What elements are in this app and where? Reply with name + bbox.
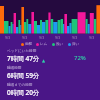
button[interactable]: ベッドにいた時間: [7, 49, 94, 63]
staticText: 9/3: [39, 35, 45, 40]
staticText: 7時間 47分: [7, 54, 40, 63]
staticText: 覚醒: [25, 42, 32, 46]
staticText: 睡眠までの時間: [7, 83, 33, 88]
staticText: ベッドにいた時間: [7, 49, 37, 54]
staticText: 9/3: [89, 35, 95, 40]
staticText: 6時間 59分: [7, 71, 40, 80]
staticText: 睡眠時間: [7, 66, 22, 71]
staticText: 9/3: [5, 35, 11, 40]
staticText: 浅い: [56, 42, 64, 46]
staticText: 9/3: [55, 35, 61, 40]
staticText: 9/3: [22, 35, 28, 40]
staticText: レム: [40, 42, 48, 46]
staticText: 深い: [72, 42, 80, 46]
staticText: 0時間 20分: [7, 88, 40, 97]
button[interactable]: 睡眠までの時間: [7, 83, 94, 97]
staticText: 72%: [74, 54, 86, 62]
staticText: ▲: [42, 58, 46, 63]
staticText: 9/3: [72, 35, 78, 40]
button[interactable]: 睡眠時間: [7, 66, 94, 80]
